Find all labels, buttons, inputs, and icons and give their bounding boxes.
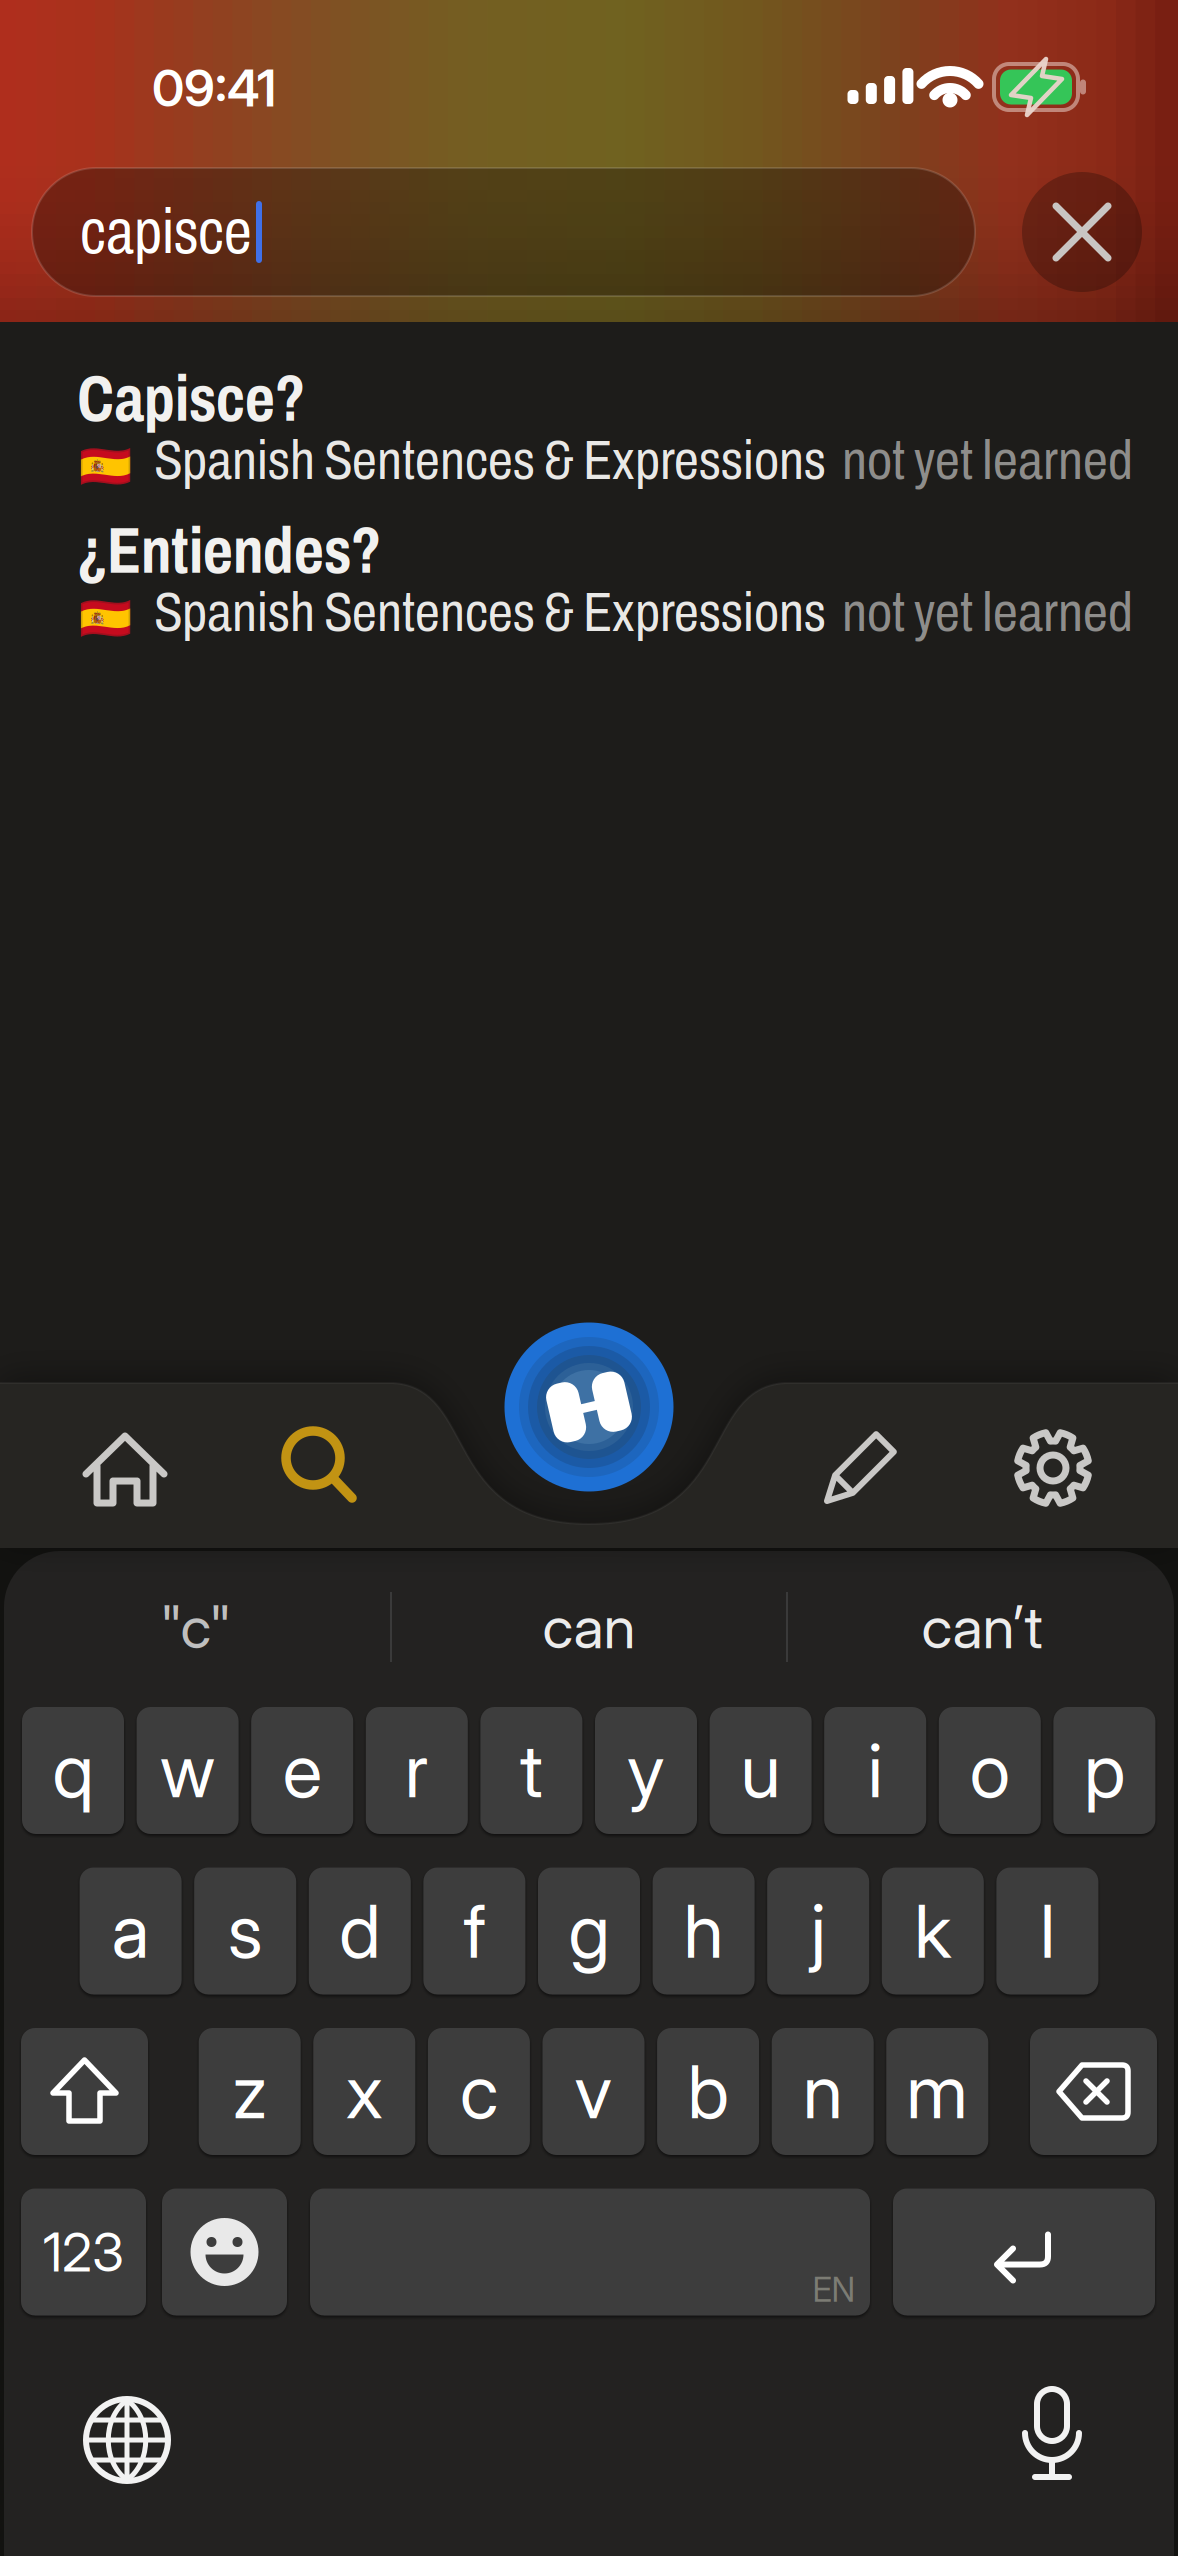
staticText: 123: [43, 2220, 124, 2283]
staticText: p: [1084, 1727, 1125, 1814]
button[interactable]: Shift: [21, 2028, 148, 2155]
staticText: b: [688, 2048, 729, 2135]
staticText: can: [542, 1592, 635, 1662]
button[interactable]: Capisce?: [0, 358, 1178, 508]
staticText: x: [346, 2048, 383, 2135]
button[interactable]: g: [538, 1867, 640, 1994]
staticText: t: [520, 1727, 543, 1814]
button[interactable]: Emoji: [162, 2188, 287, 2315]
button[interactable]: Clear search: [1022, 172, 1142, 292]
button[interactable]: Return: [893, 2188, 1155, 2315]
button[interactable]: Home: [70, 1414, 180, 1524]
button[interactable]: Edit: [802, 1414, 912, 1524]
button[interactable]: u: [710, 1707, 812, 1834]
button[interactable]: Delete: [1030, 2028, 1157, 2155]
staticText: q: [52, 1727, 93, 1814]
button[interactable]: e: [251, 1707, 353, 1834]
button[interactable]: j: [767, 1867, 869, 1994]
button[interactable]: "c": [31, 1582, 361, 1672]
staticText: h: [684, 1888, 724, 1974]
staticText: g: [568, 1888, 609, 1974]
button[interactable]: n: [772, 2028, 874, 2155]
button[interactable]: can: [424, 1582, 754, 1672]
staticText: l: [1040, 1888, 1055, 1974]
staticText: 09:41: [152, 58, 276, 118]
staticText: f: [463, 1888, 485, 1974]
button[interactable]: c: [428, 2028, 530, 2155]
staticText: u: [741, 1727, 781, 1814]
button[interactable]: d: [309, 1867, 411, 1994]
staticText: Capisce?: [77, 358, 305, 441]
button[interactable]: o: [939, 1707, 1041, 1834]
staticText: e: [283, 1727, 322, 1814]
staticText: k: [914, 1888, 951, 1974]
button[interactable]: f: [423, 1867, 525, 1994]
button[interactable]: Numbers: [21, 2188, 146, 2315]
staticText: 🇪🇸: [79, 594, 132, 643]
staticText: can’t: [921, 1592, 1042, 1662]
staticText: not yet learned: [842, 424, 1133, 496]
button[interactable]: v: [542, 2028, 644, 2155]
button[interactable]: t: [480, 1707, 582, 1834]
staticText: Spanish Sentences & Expressions: [154, 424, 826, 496]
button[interactable]: ¿Entiendes?: [0, 510, 1178, 660]
button[interactable]: l: [996, 1867, 1098, 1994]
staticText: i: [868, 1727, 883, 1814]
staticText: d: [339, 1888, 380, 1974]
staticText: n: [803, 2048, 843, 2135]
button[interactable]: x: [313, 2028, 415, 2155]
button[interactable]: s: [194, 1867, 296, 1994]
button[interactable]: p: [1053, 1707, 1155, 1834]
button[interactable]: Search: [263, 1414, 373, 1524]
button[interactable]: can’t: [817, 1582, 1147, 1672]
staticText: y: [627, 1727, 665, 1814]
button[interactable]: y: [595, 1707, 697, 1834]
button[interactable]: i: [824, 1707, 926, 1834]
button[interactable]: Next keyboard: [72, 2385, 182, 2495]
button[interactable]: Space: [310, 2188, 870, 2315]
button[interactable]: k: [882, 1867, 984, 1994]
button[interactable]: a: [80, 1867, 182, 1994]
staticText: s: [228, 1888, 263, 1974]
button[interactable]: r: [366, 1707, 468, 1834]
staticText: r: [405, 1727, 429, 1814]
staticText: j: [811, 1888, 826, 1974]
staticText: a: [112, 1888, 150, 1974]
staticText: Spanish Sentences & Expressions: [154, 576, 826, 648]
button[interactable]: b: [657, 2028, 759, 2155]
staticText: 🇪🇸: [79, 442, 132, 491]
button[interactable]: w: [137, 1707, 239, 1834]
button[interactable]: m: [886, 2028, 988, 2155]
staticText: not yet learned: [842, 576, 1133, 648]
staticText: "c": [159, 1592, 232, 1662]
button[interactable]: q: [22, 1707, 124, 1834]
button[interactable]: Dictation: [997, 2385, 1107, 2495]
button[interactable]: Search field: [32, 168, 975, 296]
staticText: m: [906, 2048, 968, 2135]
staticText: v: [574, 2048, 612, 2135]
staticText: capisce: [80, 191, 252, 272]
button[interactable]: z: [199, 2028, 301, 2155]
staticText: w: [160, 1727, 215, 1814]
staticText: ¿Entiendes?: [77, 510, 381, 593]
button[interactable]: Practice: [504, 1322, 673, 1491]
button[interactable]: Settings: [998, 1414, 1108, 1524]
staticText: o: [970, 1727, 1010, 1814]
staticText: EN: [812, 2270, 855, 2309]
staticText: z: [232, 2048, 267, 2135]
button[interactable]: h: [653, 1867, 755, 1994]
staticText: c: [460, 2048, 498, 2135]
